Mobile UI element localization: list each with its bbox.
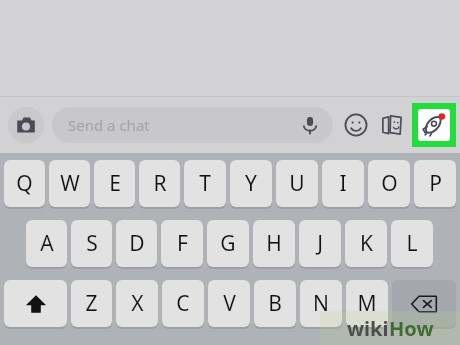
button[interactable]: V — [208, 280, 250, 327]
button[interactable]: Q — [4, 160, 45, 207]
staticText: V — [223, 289, 236, 318]
button[interactable]: L — [391, 220, 433, 267]
staticText: wiki — [347, 315, 389, 342]
button[interactable]: Y — [230, 160, 272, 207]
button[interactable]: E — [94, 160, 135, 207]
button[interactable]: S — [71, 220, 112, 267]
button[interactable]: Backspace — [392, 280, 456, 327]
staticText: L — [406, 229, 418, 258]
staticText: D — [129, 229, 145, 258]
button[interactable]: A — [26, 220, 67, 267]
button[interactable]: B — [254, 280, 296, 327]
button[interactable]: J — [299, 220, 341, 267]
button[interactable]: Games and Mini apps — [412, 103, 456, 147]
button[interactable]: P — [414, 160, 456, 207]
button[interactable]: Stickers — [341, 110, 371, 140]
staticText: J — [317, 229, 323, 258]
staticText: E — [109, 169, 121, 198]
staticText: S — [86, 229, 98, 258]
staticText: N — [313, 289, 329, 318]
staticText: Z — [85, 289, 98, 318]
staticText: A — [40, 229, 54, 258]
staticText: T — [199, 169, 211, 198]
button[interactable]: X — [116, 280, 158, 327]
staticText: U — [289, 169, 305, 198]
button[interactable]: K — [345, 220, 387, 267]
staticText: C — [176, 289, 190, 318]
staticText: Q — [16, 169, 33, 198]
staticText: W — [60, 169, 80, 198]
button[interactable]: U — [276, 160, 318, 207]
button[interactable]: T — [184, 160, 226, 207]
staticText: F — [177, 229, 188, 258]
button[interactable]: M — [346, 280, 388, 327]
button[interactable]: Shift — [4, 280, 67, 327]
staticText: B — [268, 289, 282, 318]
staticText: K — [360, 229, 373, 258]
button[interactable]: W — [49, 160, 90, 207]
button[interactable]: N — [300, 280, 342, 327]
staticText: G — [220, 229, 236, 258]
button[interactable]: I — [322, 160, 364, 207]
button[interactable]: H — [253, 220, 295, 267]
button[interactable]: Voice input — [299, 114, 321, 136]
staticText: M — [357, 289, 377, 318]
staticText: Send a chat — [68, 115, 150, 135]
staticText: O — [381, 169, 398, 198]
button[interactable]: G — [207, 220, 249, 267]
button[interactable]: F — [161, 220, 203, 267]
staticText: How — [389, 315, 434, 342]
button[interactable]: Cards — [377, 110, 407, 140]
button[interactable]: R — [139, 160, 180, 207]
button[interactable]: O — [368, 160, 410, 207]
staticText: Y — [245, 169, 257, 198]
button[interactable]: Send a chat — [52, 107, 333, 143]
staticText: H — [266, 229, 282, 258]
staticText: R — [153, 169, 167, 198]
staticText: I — [339, 169, 347, 198]
button[interactable]: C — [162, 280, 204, 327]
button[interactable]: D — [116, 220, 157, 267]
button[interactable]: Z — [71, 280, 112, 327]
staticText: X — [131, 289, 144, 318]
staticText: P — [429, 169, 442, 198]
button[interactable]: Camera — [8, 107, 44, 143]
